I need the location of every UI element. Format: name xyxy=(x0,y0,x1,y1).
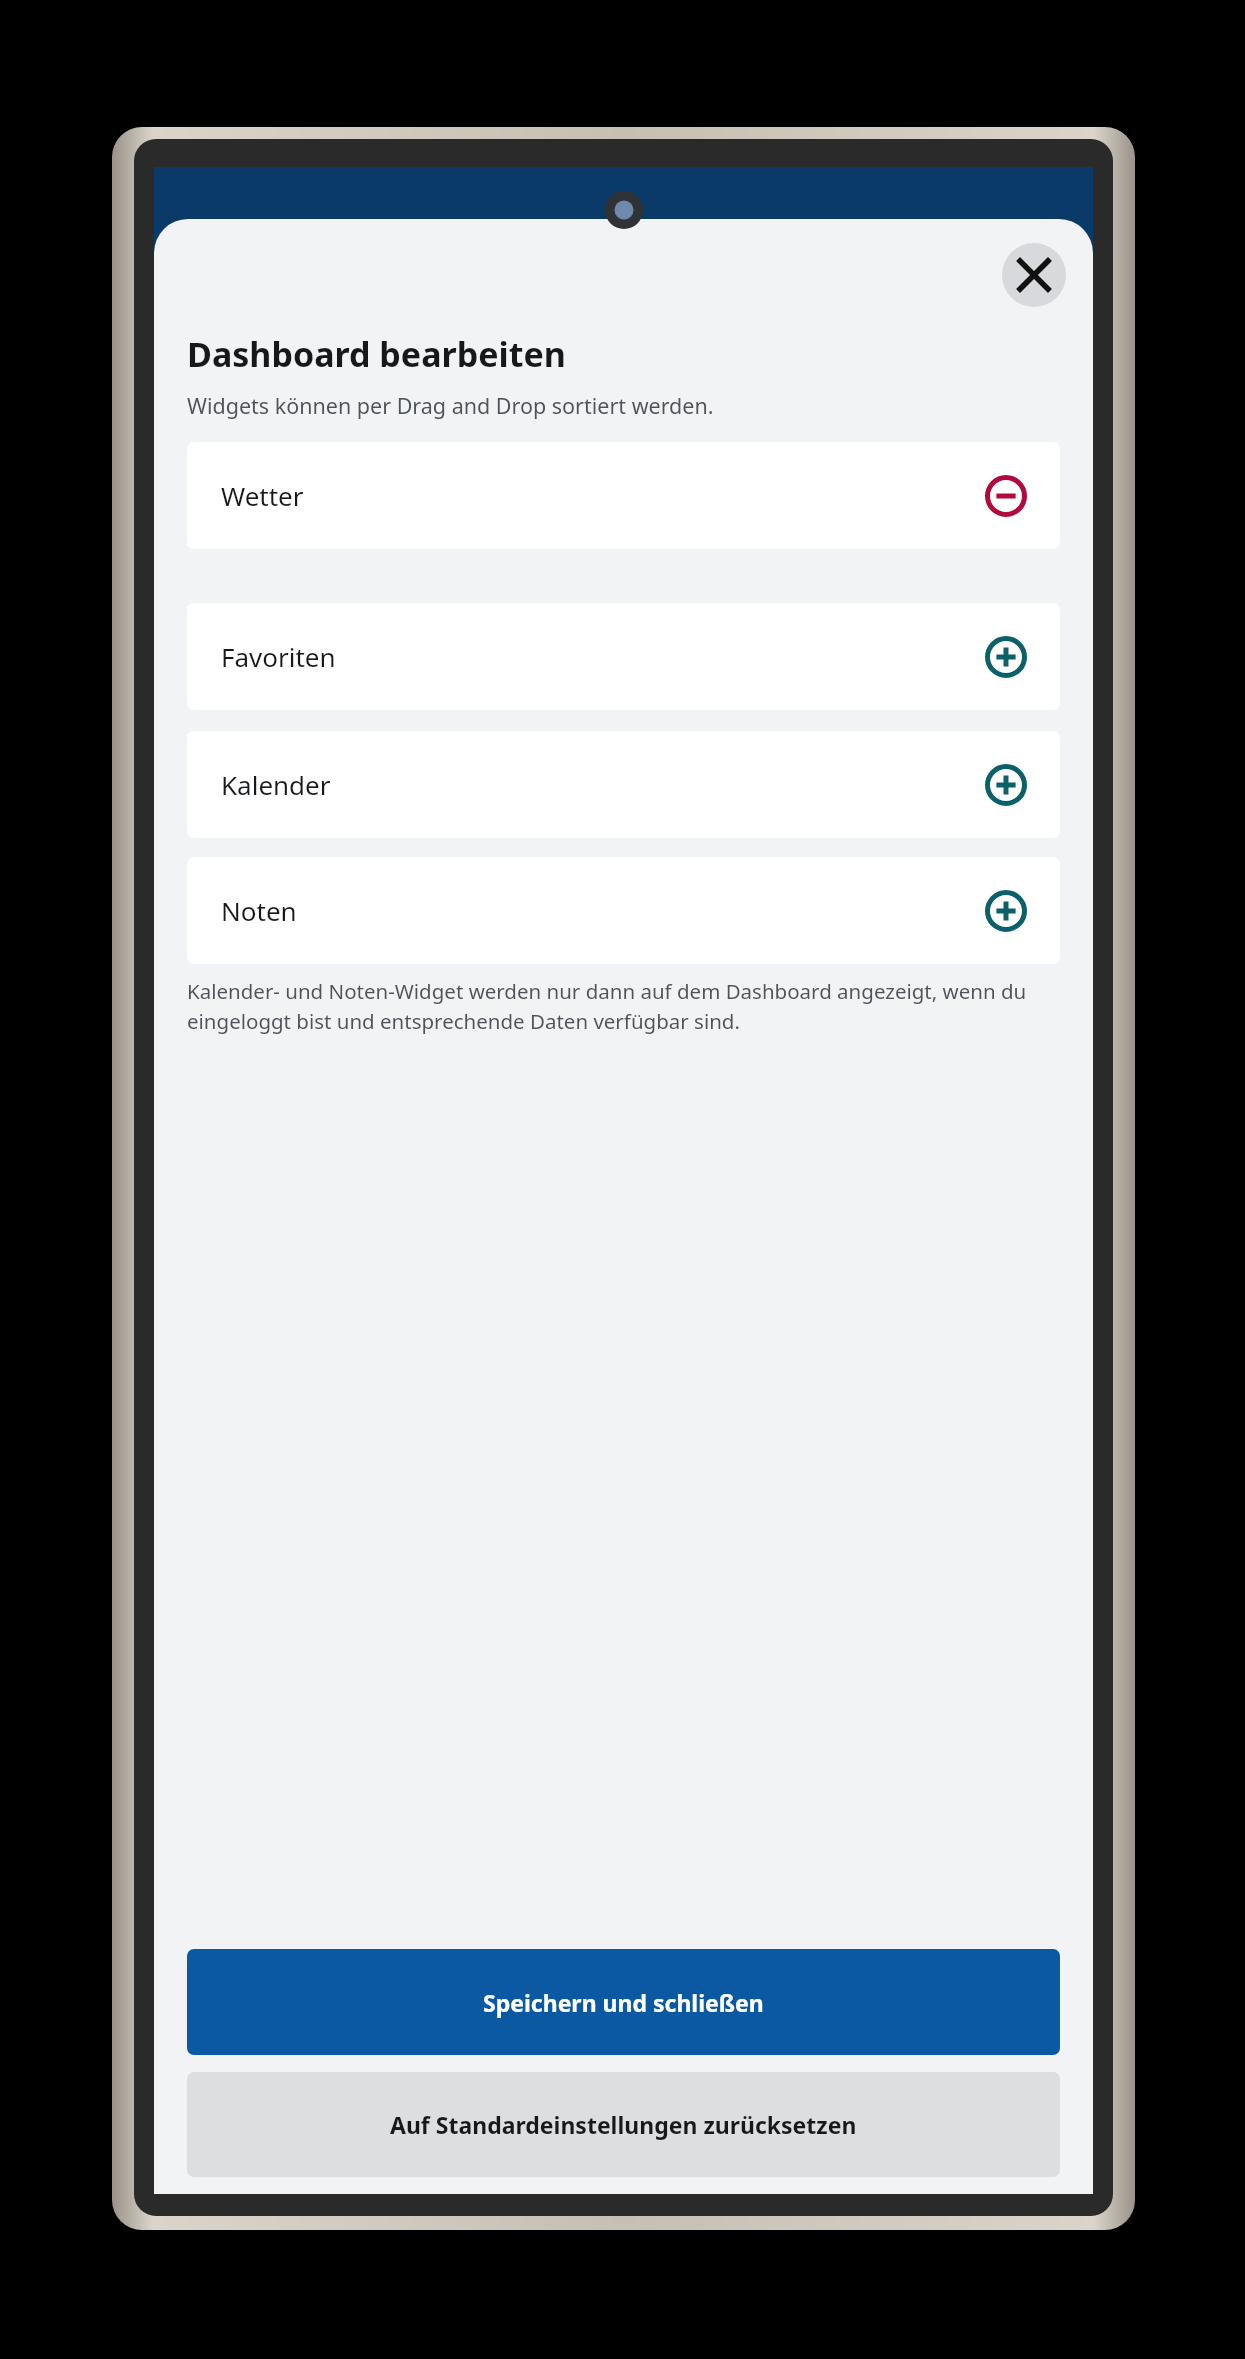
staticText: Auf Standardeinstellungen zurücksetzen xyxy=(390,2109,857,2140)
staticText: Wetter xyxy=(221,478,304,513)
other: Widget hinzufügen xyxy=(985,636,1027,678)
staticText: Favoriten xyxy=(221,639,336,674)
button[interactable]: Schließen xyxy=(1002,243,1066,307)
staticText: Kalender- und Noten-Widget werden nur da… xyxy=(187,977,1067,1035)
button[interactable]: Wetter xyxy=(187,442,1060,549)
staticText: Dashboard bearbeiten xyxy=(187,331,566,377)
other: Widget hinzufügen xyxy=(985,764,1027,806)
button[interactable]: Noten xyxy=(187,857,1060,964)
button[interactable]: Auf Standardeinstellungen zurücksetzen xyxy=(187,2072,1060,2177)
button[interactable]: Kalender xyxy=(187,731,1060,838)
button[interactable]: Speichern und schließen xyxy=(187,1949,1060,2055)
other: Widget entfernen xyxy=(985,475,1027,517)
staticText: Noten xyxy=(221,893,297,928)
staticText: Kalender xyxy=(221,767,331,802)
other: Widget hinzufügen xyxy=(985,890,1027,932)
staticText: Widgets können per Drag and Drop sortier… xyxy=(187,391,714,420)
staticText: Speichern und schließen xyxy=(483,1987,764,2018)
button[interactable]: Favoriten xyxy=(187,603,1060,710)
